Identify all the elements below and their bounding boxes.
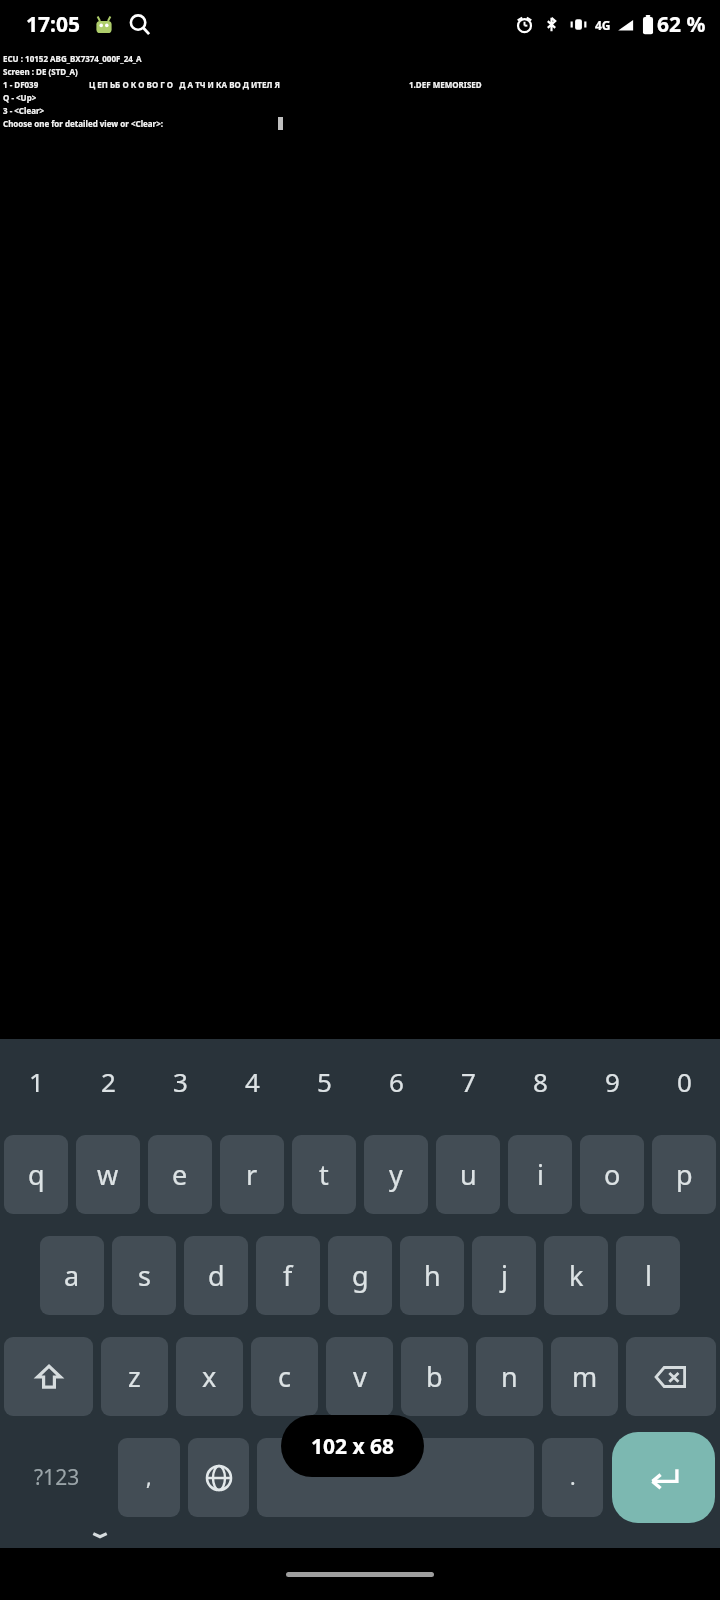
button[interactable]: Language: [188, 1438, 249, 1517]
staticText: Ц ЕП ЬБ О К О ВО Г О Д А ТЧ И КА ВО Д ИТ…: [89, 79, 280, 90]
button[interactable]: g: [328, 1236, 392, 1315]
staticText: u: [460, 1156, 477, 1193]
staticText: k: [569, 1257, 584, 1294]
button[interactable]: 7: [432, 1039, 504, 1124]
staticText: r: [246, 1156, 258, 1193]
button[interactable]: Enter: [612, 1432, 715, 1523]
button[interactable]: c: [251, 1337, 318, 1416]
button[interactable]: p: [652, 1135, 716, 1214]
button[interactable]: Search: [128, 13, 152, 37]
staticText: 3 - <Clear>: [3, 105, 45, 116]
button[interactable]: Hide keyboard: [86, 1528, 114, 1542]
staticText: z: [128, 1358, 141, 1395]
staticText: y: [389, 1156, 403, 1193]
button[interactable]: 5: [288, 1039, 360, 1124]
staticText: 6: [389, 1064, 404, 1099]
staticText: ,: [146, 1463, 152, 1492]
button[interactable]: 4: [216, 1039, 288, 1124]
staticText: 7: [461, 1064, 476, 1099]
staticText: q: [28, 1156, 45, 1193]
button[interactable]: v: [326, 1337, 393, 1416]
staticText: f: [283, 1257, 293, 1294]
button[interactable]: k: [544, 1236, 608, 1315]
staticText: 9: [605, 1064, 620, 1099]
staticText: j: [501, 1257, 508, 1294]
button[interactable]: 2: [72, 1039, 144, 1124]
staticText: 17:05: [26, 10, 80, 39]
staticText: p: [676, 1156, 693, 1193]
button[interactable]: j: [472, 1236, 536, 1315]
staticText: a: [64, 1257, 80, 1294]
button[interactable]: 6: [360, 1039, 432, 1124]
staticText: Screen : DE (STD_A): [3, 66, 78, 77]
staticText: e: [172, 1156, 188, 1193]
button[interactable]: u: [436, 1135, 500, 1214]
button[interactable]: i: [508, 1135, 572, 1214]
button[interactable]: d: [184, 1236, 248, 1315]
staticText: l: [645, 1257, 652, 1294]
staticText: 0: [677, 1064, 692, 1099]
staticText: 2: [101, 1064, 116, 1099]
button[interactable]: Backspace: [626, 1337, 716, 1416]
staticText: .: [570, 1463, 576, 1492]
button[interactable]: ?123: [3, 1430, 111, 1525]
staticText: 62 %: [657, 10, 706, 39]
staticText: w: [97, 1156, 119, 1193]
staticText: 3: [173, 1064, 188, 1099]
button[interactable]: h: [400, 1236, 464, 1315]
staticText: i: [537, 1156, 544, 1193]
staticText: t: [319, 1156, 329, 1193]
button[interactable]: [257, 1438, 534, 1517]
button[interactable]: ,: [118, 1438, 180, 1517]
button[interactable]: x: [176, 1337, 243, 1416]
staticText: h: [424, 1257, 441, 1294]
button[interactable]: Shift: [4, 1337, 93, 1416]
button[interactable]: q: [4, 1135, 68, 1214]
staticText: 5: [317, 1064, 332, 1099]
staticText: Choose one for detailed view or <Clear>:: [3, 118, 164, 129]
staticText: ECU : 10152 ABG_BX7374_000F_24_A: [3, 53, 142, 64]
staticText: c: [278, 1358, 291, 1395]
staticText: 4G: [595, 17, 611, 33]
staticText: g: [352, 1257, 369, 1294]
staticText: 4: [245, 1064, 260, 1099]
button[interactable]: 9: [576, 1039, 648, 1124]
staticText: s: [138, 1257, 151, 1294]
button[interactable]: s: [112, 1236, 176, 1315]
staticText: n: [501, 1358, 518, 1395]
staticText: o: [604, 1156, 621, 1193]
button[interactable]: 8: [504, 1039, 576, 1124]
staticText: v: [353, 1358, 367, 1395]
button[interactable]: f: [256, 1236, 320, 1315]
button[interactable]: 3: [144, 1039, 216, 1124]
staticText: x: [202, 1358, 217, 1395]
button[interactable]: o: [580, 1135, 644, 1214]
staticText: Q - <Up>: [3, 92, 37, 103]
button[interactable]: n: [476, 1337, 543, 1416]
button[interactable]: y: [364, 1135, 428, 1214]
staticText: 1: [29, 1064, 44, 1099]
button[interactable]: b: [401, 1337, 468, 1416]
button[interactable]: t: [292, 1135, 356, 1214]
button[interactable]: r: [220, 1135, 284, 1214]
button[interactable]: z: [101, 1337, 168, 1416]
staticText: b: [426, 1358, 443, 1395]
staticText: m: [572, 1358, 598, 1395]
staticText: 102 x 68: [311, 1432, 395, 1461]
staticText: 1.DEF MEMORISED: [409, 79, 482, 90]
button[interactable]: l: [616, 1236, 680, 1315]
button[interactable]: a: [40, 1236, 104, 1315]
button[interactable]: .: [542, 1438, 603, 1517]
button[interactable]: w: [76, 1135, 140, 1214]
button[interactable]: e: [148, 1135, 212, 1214]
staticText: 8: [533, 1064, 548, 1099]
button[interactable]: 1: [0, 1039, 72, 1124]
staticText: d: [208, 1257, 225, 1294]
button[interactable]: 0: [648, 1039, 720, 1124]
staticText: 1 - DF039: [3, 79, 39, 90]
button[interactable]: m: [551, 1337, 618, 1416]
staticText: ?123: [34, 1463, 80, 1492]
